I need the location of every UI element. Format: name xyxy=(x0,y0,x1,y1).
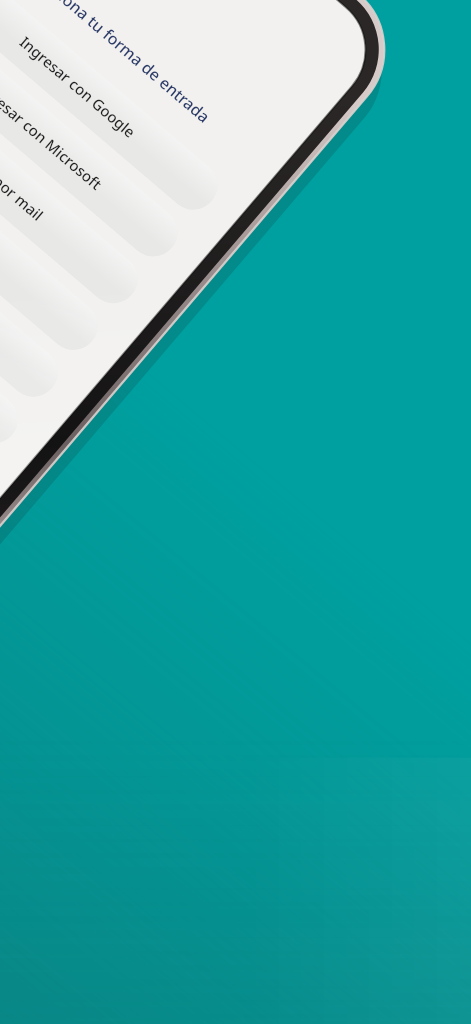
button[interactable]: Pantalla de opciones de ingreso xyxy=(0,0,471,1024)
